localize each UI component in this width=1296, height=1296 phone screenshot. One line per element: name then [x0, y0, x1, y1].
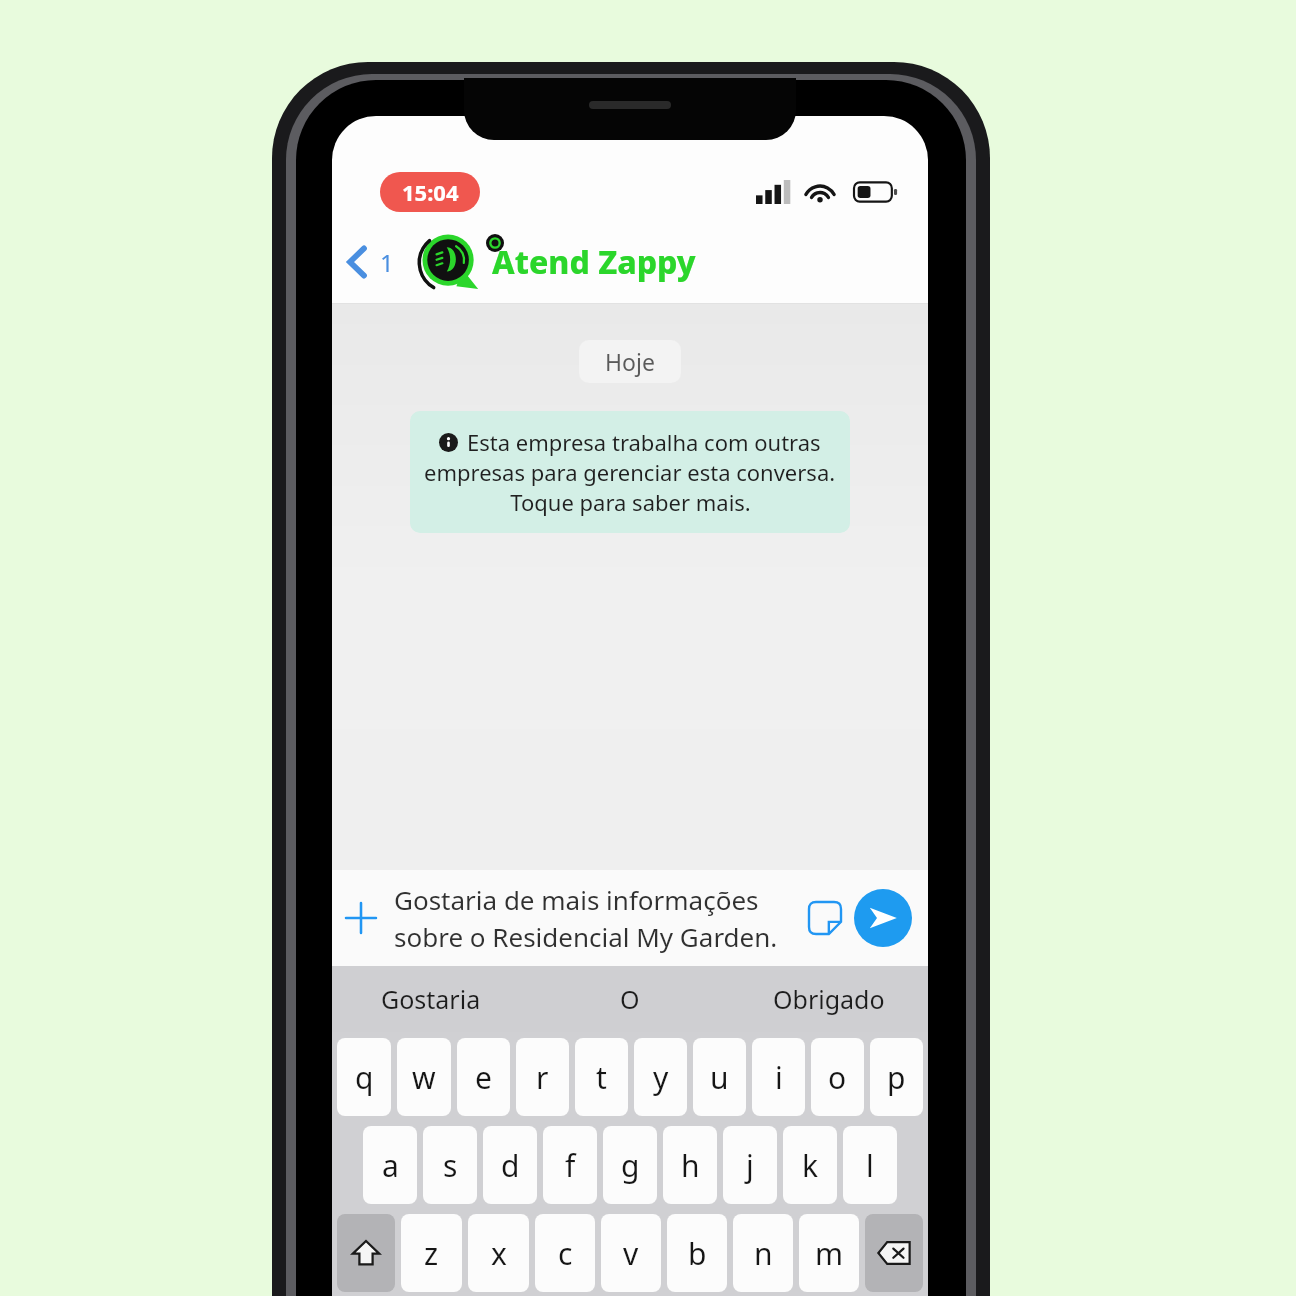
- staticText: l: [866, 1145, 874, 1186]
- staticText: Toque para saber mais.: [510, 487, 751, 517]
- staticText: sobre o Residencial My Garden.: [394, 919, 778, 954]
- button[interactable]: c: [535, 1214, 595, 1292]
- staticText: Hoje: [605, 346, 655, 377]
- button[interactable]: x: [468, 1214, 529, 1292]
- button[interactable]: Gostaria de mais informações: [390, 882, 800, 954]
- staticText: m: [815, 1233, 844, 1274]
- button[interactable]: m: [799, 1214, 859, 1292]
- button[interactable]: Gostaria: [332, 966, 530, 1032]
- button[interactable]: b: [667, 1214, 727, 1292]
- staticText: s: [443, 1145, 458, 1186]
- staticText: v: [623, 1233, 639, 1274]
- button[interactable]: Back: [332, 237, 402, 287]
- staticText: O: [620, 982, 640, 1016]
- button[interactable]: Esta empresa trabalha com outras: [410, 411, 850, 533]
- staticText: 1: [380, 246, 394, 279]
- button[interactable]: q: [337, 1038, 391, 1116]
- button[interactable]: Atend Zappy: [418, 226, 696, 298]
- staticText: f: [565, 1145, 576, 1186]
- button[interactable]: u: [693, 1038, 746, 1116]
- button[interactable]: e: [457, 1038, 510, 1116]
- staticText: Esta empresa trabalha com outras: [467, 427, 821, 457]
- staticText: 15:04: [402, 177, 459, 207]
- staticText: b: [688, 1233, 707, 1274]
- staticText: Gostaria de mais informações: [394, 882, 759, 917]
- button[interactable]: Attach: [332, 889, 390, 947]
- button[interactable]: i: [752, 1038, 805, 1116]
- staticText: h: [681, 1145, 700, 1186]
- staticText: u: [710, 1057, 729, 1098]
- staticText: j: [746, 1145, 754, 1186]
- button[interactable]: n: [733, 1214, 793, 1292]
- staticText: z: [424, 1233, 439, 1274]
- button[interactable]: t: [575, 1038, 628, 1116]
- staticText: n: [754, 1233, 773, 1274]
- button[interactable]: Backspace: [865, 1214, 923, 1292]
- button[interactable]: v: [601, 1214, 661, 1292]
- staticText: p: [887, 1057, 906, 1098]
- button[interactable]: g: [603, 1126, 657, 1204]
- staticText: x: [491, 1233, 507, 1274]
- button[interactable]: O: [530, 966, 729, 1032]
- button[interactable]: a: [363, 1126, 417, 1204]
- button[interactable]: d: [483, 1126, 537, 1204]
- staticText: d: [501, 1145, 520, 1186]
- staticText: Gostaria: [381, 982, 481, 1016]
- staticText: c: [558, 1233, 573, 1274]
- button[interactable]: y: [634, 1038, 687, 1116]
- button[interactable]: z: [401, 1214, 462, 1292]
- staticText: y: [653, 1057, 669, 1098]
- staticText: o: [828, 1057, 847, 1098]
- staticText: e: [475, 1057, 492, 1098]
- staticText: r: [536, 1057, 549, 1098]
- button[interactable]: s: [423, 1126, 477, 1204]
- staticText: k: [802, 1145, 819, 1186]
- staticText: t: [596, 1057, 607, 1098]
- staticText: i: [775, 1057, 783, 1098]
- button[interactable]: k: [783, 1126, 837, 1204]
- button[interactable]: h: [663, 1126, 717, 1204]
- staticText: a: [382, 1145, 399, 1186]
- button[interactable]: Shift: [337, 1214, 395, 1292]
- button[interactable]: p: [870, 1038, 923, 1116]
- button[interactable]: l: [843, 1126, 897, 1204]
- button[interactable]: r: [516, 1038, 569, 1116]
- button[interactable]: o: [811, 1038, 864, 1116]
- button[interactable]: Obrigado: [729, 966, 928, 1032]
- button[interactable]: Sticker: [800, 893, 850, 943]
- button[interactable]: w: [397, 1038, 451, 1116]
- staticText: g: [621, 1145, 640, 1186]
- staticText: Atend Zappy: [492, 240, 696, 284]
- button[interactable]: Send: [854, 889, 928, 947]
- button[interactable]: f: [543, 1126, 597, 1204]
- staticText: Obrigado: [773, 982, 885, 1016]
- staticText: empresas para gerenciar esta conversa.: [424, 457, 836, 487]
- staticText: w: [412, 1057, 436, 1098]
- staticText: q: [355, 1057, 374, 1098]
- button[interactable]: j: [723, 1126, 777, 1204]
